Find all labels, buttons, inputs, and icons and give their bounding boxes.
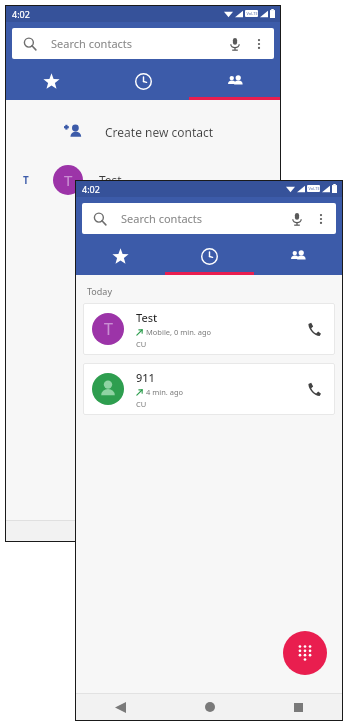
staticText: Search contacts: [121, 211, 203, 226]
staticText: Search contacts: [51, 36, 133, 51]
button[interactable]: Create new contact: [5, 112, 281, 152]
staticText: CU: [136, 399, 147, 409]
staticText: 911: [136, 370, 155, 385]
staticText: T: [64, 170, 73, 190]
button[interactable]: Contacts: [254, 240, 343, 272]
button[interactable]: Contacts: [189, 65, 281, 97]
button[interactable]: Recents: [254, 693, 343, 721]
staticText: Test: [136, 310, 158, 325]
staticText: VoLTE: [246, 11, 258, 16]
button[interactable]: 911: [83, 363, 335, 415]
staticText: 4 min. ago: [146, 387, 184, 397]
staticText: Mobile, 0 min. ago: [146, 327, 212, 337]
button[interactable]: Call 911: [297, 372, 331, 406]
button[interactable]: Home: [165, 693, 254, 721]
button[interactable]: Favourites: [75, 240, 165, 272]
button[interactable]: Recents: [97, 65, 189, 97]
staticText: 4:02: [12, 8, 30, 20]
button[interactable]: Dialpad: [283, 631, 327, 675]
button[interactable]: More options: [309, 207, 333, 231]
button[interactable]: T: [83, 303, 335, 355]
button[interactable]: More options: [247, 32, 271, 56]
button[interactable]: Call Test: [297, 312, 331, 346]
button[interactable]: Recents: [165, 240, 254, 272]
staticText: Create new contact: [105, 124, 214, 140]
button[interactable]: T: [5, 160, 281, 200]
button[interactable]: Search contacts: [82, 203, 336, 234]
staticText: Today: [87, 285, 112, 297]
button[interactable]: Search contacts: [12, 28, 274, 59]
staticText: CU: [136, 339, 147, 349]
staticText: T: [104, 318, 113, 340]
staticText: T: [23, 173, 29, 187]
button[interactable]: Back: [75, 693, 165, 721]
button[interactable]: Favourites: [5, 65, 97, 97]
button[interactable]: Voice search: [285, 207, 309, 231]
staticText: Test: [99, 172, 122, 188]
button[interactable]: Voice search: [223, 32, 247, 56]
staticText: 4:02: [82, 183, 100, 195]
staticText: VoLTE: [308, 186, 320, 191]
